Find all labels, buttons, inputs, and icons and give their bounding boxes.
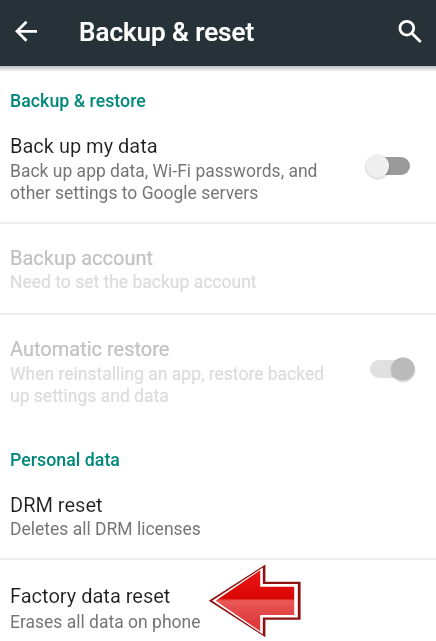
button[interactable]: Factory data reset	[0, 558, 436, 641]
staticText: Automatic restore	[10, 337, 170, 360]
button[interactable]: Search	[392, 14, 424, 46]
staticText: Backup account	[10, 246, 153, 269]
button[interactable]: Backup account	[0, 223, 436, 313]
staticText: Deletes all DRM licenses	[10, 519, 201, 540]
button[interactable]: Switch on	[362, 349, 418, 389]
button[interactable]: Automatic restore	[0, 314, 436, 430]
staticText: Back up my data	[10, 134, 158, 157]
staticText: Erases all data on phone	[10, 612, 201, 633]
staticText: When reinstalling an app, restore backed…	[10, 364, 325, 406]
button[interactable]: DRM reset	[0, 470, 436, 557]
button[interactable]: Navigate up	[12, 16, 42, 46]
staticText: Back up app data, Wi-Fi passwords, and o…	[10, 161, 318, 203]
button[interactable]: Back up my data	[0, 66, 436, 222]
staticText: Backup & restore	[10, 90, 146, 111]
staticText: Backup & reset	[79, 17, 255, 47]
staticText: Personal data	[10, 449, 120, 470]
staticText: Need to set the backup account	[10, 272, 257, 293]
staticText: DRM reset	[10, 493, 103, 516]
button[interactable]: Switch off	[362, 146, 418, 186]
staticText: Factory data reset	[10, 584, 171, 607]
